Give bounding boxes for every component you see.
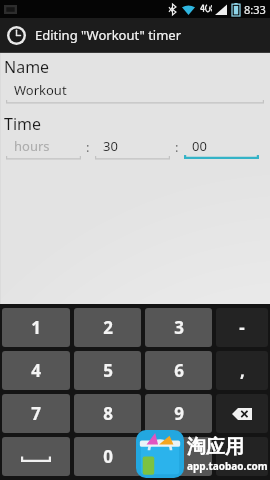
staticText: 5 [103, 359, 113, 382]
button[interactable]: Workout [6, 81, 264, 104]
staticText: Name [4, 56, 50, 78]
button[interactable]: Space [2, 437, 70, 476]
staticText: 0 [103, 445, 113, 468]
staticText: : [175, 138, 179, 156]
staticText: 淘应用 [187, 435, 244, 459]
staticText: 00 [192, 137, 207, 155]
staticText: 8 [103, 402, 113, 425]
staticText: 6 [174, 359, 184, 382]
staticText: : [86, 138, 90, 156]
button[interactable]: 9 [145, 394, 212, 433]
button[interactable] [216, 437, 268, 476]
button[interactable]: , [216, 351, 268, 390]
staticText: Editing "Workout" timer [35, 26, 182, 44]
staticText: hours [14, 137, 50, 155]
button[interactable]: 3 [145, 308, 212, 347]
button[interactable]: Timer [0, 18, 270, 52]
button[interactable]: 00 [184, 137, 259, 160]
button[interactable]: 7 [2, 394, 70, 433]
button[interactable]: 4 [2, 351, 70, 390]
staticText: Workout [14, 81, 67, 99]
staticText: 3 [174, 316, 184, 339]
staticText: 9 [174, 402, 184, 425]
staticText: - [239, 316, 245, 339]
staticText: 30 [103, 137, 118, 155]
button[interactable]: 5 [74, 351, 141, 390]
button[interactable] [145, 437, 212, 476]
staticText: 7 [31, 402, 41, 425]
button[interactable]: Delete [216, 394, 268, 433]
button[interactable]: 1 [2, 308, 70, 347]
staticText: 2 [103, 316, 113, 339]
other: Timer [7, 26, 26, 45]
staticText: app.taobao.com [187, 459, 268, 473]
button[interactable]: 0 [74, 437, 141, 476]
staticText: 1 [31, 316, 41, 339]
button[interactable]: 8 [74, 394, 141, 433]
staticText: , [240, 359, 245, 382]
button[interactable]: 6 [145, 351, 212, 390]
staticText: 8:33 [244, 2, 266, 17]
staticText: Time [4, 113, 42, 135]
button[interactable]: 30 [95, 137, 170, 160]
button[interactable]: hours [6, 137, 81, 160]
staticText: 4 [31, 359, 41, 382]
button[interactable]: - [216, 308, 268, 347]
button[interactable]: 2 [74, 308, 141, 347]
